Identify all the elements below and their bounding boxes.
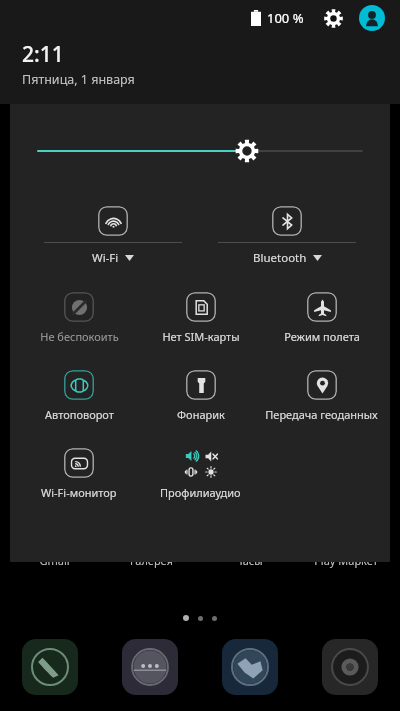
staticText: 100 %: [267, 9, 304, 27]
button[interactable]: Camera: [322, 639, 378, 695]
button[interactable]: Settings: [320, 5, 346, 31]
staticText: Фонарик: [177, 407, 225, 422]
button[interactable]: Browser: [222, 639, 278, 695]
button[interactable]: User profile: [358, 4, 386, 32]
staticText: Автоповорот: [45, 407, 114, 422]
staticText: Gmail: [39, 553, 70, 568]
button[interactable]: Режим полета: [261, 292, 382, 344]
button[interactable]: Не беспокоить: [18, 292, 140, 344]
button[interactable]: Нет SIM-карты: [140, 292, 261, 344]
staticText: Bluetooth: [253, 250, 307, 266]
staticText: 2:11: [22, 40, 64, 69]
staticText: Галерея: [130, 553, 173, 568]
button[interactable]: Wi-Fi: [26, 206, 200, 266]
button[interactable]: Brightness: [10, 134, 390, 168]
button[interactable]: Автоповорот: [18, 370, 140, 422]
button[interactable]: Wi-Fi-монитор: [18, 448, 140, 500]
button[interactable]: Профилиаудио: [140, 448, 261, 500]
button[interactable]: Фонарик: [140, 370, 261, 422]
button[interactable]: Phone: [22, 639, 78, 695]
staticText: Режим полета: [284, 329, 360, 344]
staticText: Не беспокоить: [40, 329, 119, 344]
staticText: Профилиаудио: [160, 485, 241, 500]
staticText: Часы: [235, 553, 263, 568]
staticText: Play Маркет: [314, 553, 378, 568]
staticText: Пятница, 1 января: [22, 71, 135, 88]
button[interactable]: Messages: [122, 639, 178, 695]
button[interactable]: Передача геоданных: [261, 370, 382, 422]
staticText: Нет SIM-карты: [162, 329, 240, 344]
staticText: Wi-Fi-монитор: [41, 485, 117, 500]
button[interactable]: Bluetooth: [200, 206, 374, 266]
staticText: Передача геоданных: [265, 407, 378, 422]
staticText: Wi-Fi: [92, 250, 119, 266]
